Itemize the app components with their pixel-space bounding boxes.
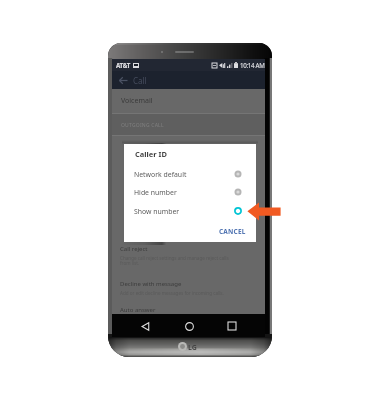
staticText: Voicemail — [121, 96, 153, 106]
button[interactable]: Decline with message — [112, 280, 265, 296]
staticText: Hide number — [134, 188, 177, 197]
staticText: Auto answer — [120, 306, 156, 314]
button[interactable]: CANCEL — [215, 223, 249, 239]
staticText: Call reject — [120, 245, 148, 253]
staticText: AT&T — [116, 61, 130, 69]
button[interactable]: Network default — [124, 165, 256, 183]
button[interactable]: Show number — [124, 202, 256, 220]
button[interactable]: Voicemail — [112, 89, 265, 113]
button[interactable]: Hide number — [124, 183, 256, 201]
staticText: Call — [133, 75, 147, 86]
staticText: Add or edit decline messages for incomin… — [120, 290, 224, 296]
button[interactable]: Navigate up — [117, 74, 129, 86]
staticText: LG — [188, 343, 197, 353]
button[interactable]: Auto answer — [112, 306, 265, 314]
other: Pointer highlighting Show number — [247, 202, 281, 221]
staticText: Network default — [134, 170, 187, 179]
button[interactable]: Home — [179, 316, 199, 336]
button[interactable]: Back — [135, 316, 155, 336]
staticText: 10:14 AM — [240, 61, 265, 69]
staticText: Caller ID — [135, 149, 167, 159]
staticText: OUTGOING CALL — [121, 122, 164, 129]
button[interactable]: Recent apps — [222, 316, 242, 336]
staticText: Show number — [134, 207, 180, 216]
staticText: Decline with message — [120, 280, 182, 288]
button[interactable]: Call reject — [112, 245, 265, 267]
staticText: CANCEL — [219, 227, 246, 236]
